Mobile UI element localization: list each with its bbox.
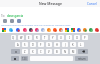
button[interactable]: Sticker — [76, 27, 82, 33]
staticText: I — [69, 36, 70, 40]
button[interactable]: Sticker — [28, 27, 34, 33]
button[interactable]: J — [62, 42, 68, 47]
button[interactable]: I — [66, 35, 72, 40]
button[interactable]: C — [38, 49, 44, 54]
button[interactable]: Sticker — [58, 27, 64, 33]
staticText: To: — [1, 14, 6, 18]
button[interactable]: V — [46, 49, 52, 54]
button[interactable]: Sticker — [46, 27, 52, 33]
button[interactable]: Sticker — [21, 27, 28, 33]
button[interactable]: Q — [11, 35, 16, 40]
button[interactable]: Sticker — [82, 27, 88, 33]
staticText: D — [32, 43, 34, 47]
button[interactable]: Cancel — [87, 2, 97, 6]
button[interactable]: U — [58, 35, 64, 40]
staticText: W — [20, 36, 23, 40]
staticText: N — [64, 50, 66, 54]
button[interactable]: R — [34, 35, 40, 40]
staticText: R — [36, 36, 38, 40]
button[interactable]: Emoji keyboard — [11, 56, 19, 61]
button[interactable]: Y — [50, 35, 56, 40]
staticText: F — [40, 43, 42, 47]
staticText: J — [65, 43, 66, 47]
button[interactable]: X — [30, 49, 36, 54]
button[interactable]: Contact — [15, 18, 22, 23]
staticText: U — [60, 36, 62, 40]
button[interactable]: Sticker — [40, 27, 46, 33]
staticText: L — [80, 43, 82, 47]
button[interactable]: Sticker — [70, 27, 76, 33]
button[interactable]: H — [54, 42, 60, 47]
button[interactable]: 123 — [21, 56, 28, 61]
button[interactable]: Sticker — [0, 27, 7, 33]
staticText: Z — [24, 50, 26, 54]
staticText: G — [48, 43, 50, 47]
button[interactable]: Sticker — [7, 27, 14, 33]
staticText: T — [44, 36, 46, 40]
staticText: dave.garcia — [7, 14, 24, 18]
button[interactable]: W — [18, 35, 24, 40]
button[interactable]: Backspace — [78, 49, 88, 54]
staticText: 123 — [22, 57, 27, 61]
staticText: K — [72, 43, 74, 47]
staticText: X — [32, 50, 34, 54]
staticText: C — [40, 50, 42, 54]
staticText: B — [56, 50, 58, 54]
button[interactable]: Sticker — [94, 27, 100, 33]
staticText: E — [28, 36, 30, 40]
button[interactable]: B — [54, 49, 60, 54]
button[interactable]: F — [38, 42, 44, 47]
button[interactable]: Z — [22, 49, 28, 54]
button[interactable]: Sticker — [14, 27, 21, 33]
button[interactable]: Sticker — [34, 27, 40, 33]
button[interactable]: Sticker — [52, 27, 58, 33]
staticText: Cancel — [87, 2, 97, 6]
staticText: O — [76, 36, 79, 40]
button[interactable]: A — [15, 42, 20, 47]
button[interactable]: return — [75, 56, 88, 61]
button[interactable]: D — [30, 42, 36, 47]
button[interactable]: Contact — [8, 18, 15, 23]
button[interactable]: Sticker — [64, 27, 70, 33]
button[interactable]: G — [46, 42, 52, 47]
button[interactable]: S — [22, 42, 28, 47]
button[interactable]: E — [26, 35, 32, 40]
staticText: A — [17, 43, 19, 47]
staticText: V — [48, 50, 50, 54]
staticText: Q — [12, 36, 15, 40]
button[interactable]: O — [74, 35, 80, 40]
button[interactable]: L — [78, 42, 84, 47]
button[interactable]: P — [82, 35, 88, 40]
staticText: Messages sent to this number may be char… — [1, 24, 71, 27]
button[interactable]: M — [70, 49, 76, 54]
button[interactable]: Shift — [11, 49, 20, 54]
button[interactable]: Sticker — [88, 27, 94, 33]
staticText: M — [72, 50, 75, 54]
staticText: return — [78, 57, 86, 61]
button[interactable]: N — [62, 49, 68, 54]
staticText: Y — [52, 36, 54, 40]
staticText: H — [56, 43, 58, 47]
button[interactable]: K — [70, 42, 76, 47]
staticText: S — [24, 43, 26, 47]
staticText: New Message — [39, 1, 62, 6]
button[interactable]: Contact — [1, 18, 8, 23]
staticText: P — [84, 36, 86, 40]
button[interactable]: T — [42, 35, 48, 40]
